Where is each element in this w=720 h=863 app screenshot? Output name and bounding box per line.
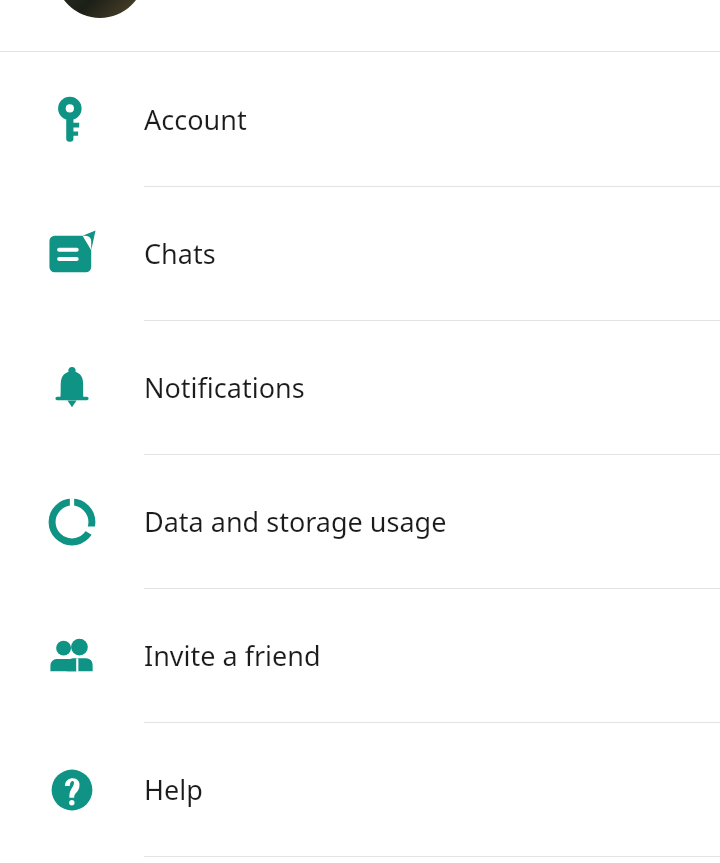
other: Invite a friend — [48, 632, 96, 680]
staticText: Invite a friend — [144, 637, 321, 674]
staticText: Data and storage usage — [144, 503, 447, 540]
button[interactable]: Help — [0, 723, 720, 857]
button[interactable]: Chats — [0, 187, 720, 321]
other: Account — [48, 96, 96, 144]
staticText: Notifications — [144, 369, 305, 406]
other: Help — [48, 766, 96, 814]
other: Data and storage usage — [48, 498, 96, 546]
staticText: Account — [144, 101, 247, 138]
button[interactable]: Notifications — [0, 321, 720, 455]
button[interactable]: Profile photo — [55, 0, 145, 18]
other: Notifications — [48, 364, 96, 412]
other: Chats — [48, 230, 96, 278]
staticText: Help — [144, 771, 203, 808]
button[interactable]: Data and storage usage — [0, 455, 720, 589]
button[interactable]: Account — [0, 53, 720, 187]
button[interactable]: Invite a friend — [0, 589, 720, 723]
staticText: Chats — [144, 235, 216, 272]
